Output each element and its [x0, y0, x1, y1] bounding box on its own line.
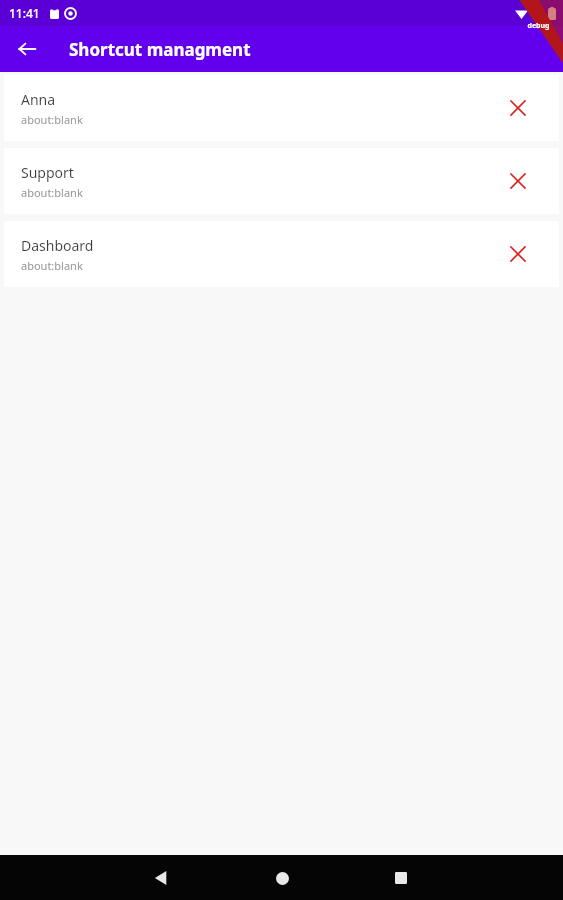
button[interactable]: Delete Anna: [503, 93, 533, 123]
button[interactable]: Home: [262, 858, 302, 898]
staticText: 11:41: [9, 5, 40, 21]
staticText: debug: [527, 21, 550, 31]
staticText: about:blank: [21, 185, 83, 200]
button[interactable]: Anna: [4, 75, 559, 141]
button[interactable]: Delete Support: [503, 166, 533, 196]
staticText: Support: [21, 163, 74, 182]
staticText: Anna: [21, 90, 56, 109]
button[interactable]: Dashboard: [4, 221, 559, 287]
button[interactable]: Back: [141, 858, 181, 898]
staticText: about:blank: [21, 258, 83, 273]
button[interactable]: Delete Dashboard: [503, 239, 533, 269]
staticText: Shortcut managment: [69, 38, 251, 61]
button[interactable]: Back: [7, 29, 47, 69]
button[interactable]: Recents: [381, 858, 421, 898]
button[interactable]: Support: [4, 148, 559, 214]
staticText: Dashboard: [21, 236, 94, 255]
staticText: about:blank: [21, 112, 83, 127]
